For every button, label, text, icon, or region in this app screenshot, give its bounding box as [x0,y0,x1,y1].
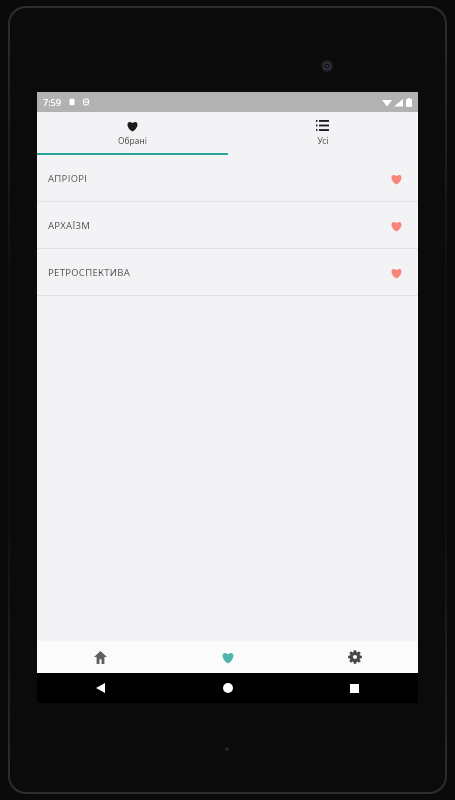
button[interactable]: Remove from favourites [386,263,406,283]
button[interactable]: Home [164,673,291,703]
staticText: РЕТРОСПЕКТИВА [48,266,131,279]
button[interactable]: Back [37,673,164,703]
button[interactable]: Обрані [37,112,227,155]
button[interactable]: Home [37,641,164,673]
button[interactable]: Recent apps [291,673,418,703]
staticText: 7:59 [43,96,61,108]
staticText: Обрані [118,135,147,147]
staticText: Усі [317,135,329,147]
staticText: АПРІОРІ [48,172,88,185]
button[interactable]: Settings [291,641,418,673]
button[interactable]: РЕТРОСПЕКТИВА [37,249,418,296]
button[interactable]: Remove from favourites [386,169,406,189]
button[interactable]: Усі [227,112,418,155]
button[interactable]: АРХАЇЗМ [37,202,418,249]
button[interactable]: Favourites [164,641,291,673]
staticText: АРХАЇЗМ [48,219,91,232]
button[interactable]: Remove from favourites [386,216,406,236]
button[interactable]: АПРІОРІ [37,155,418,202]
